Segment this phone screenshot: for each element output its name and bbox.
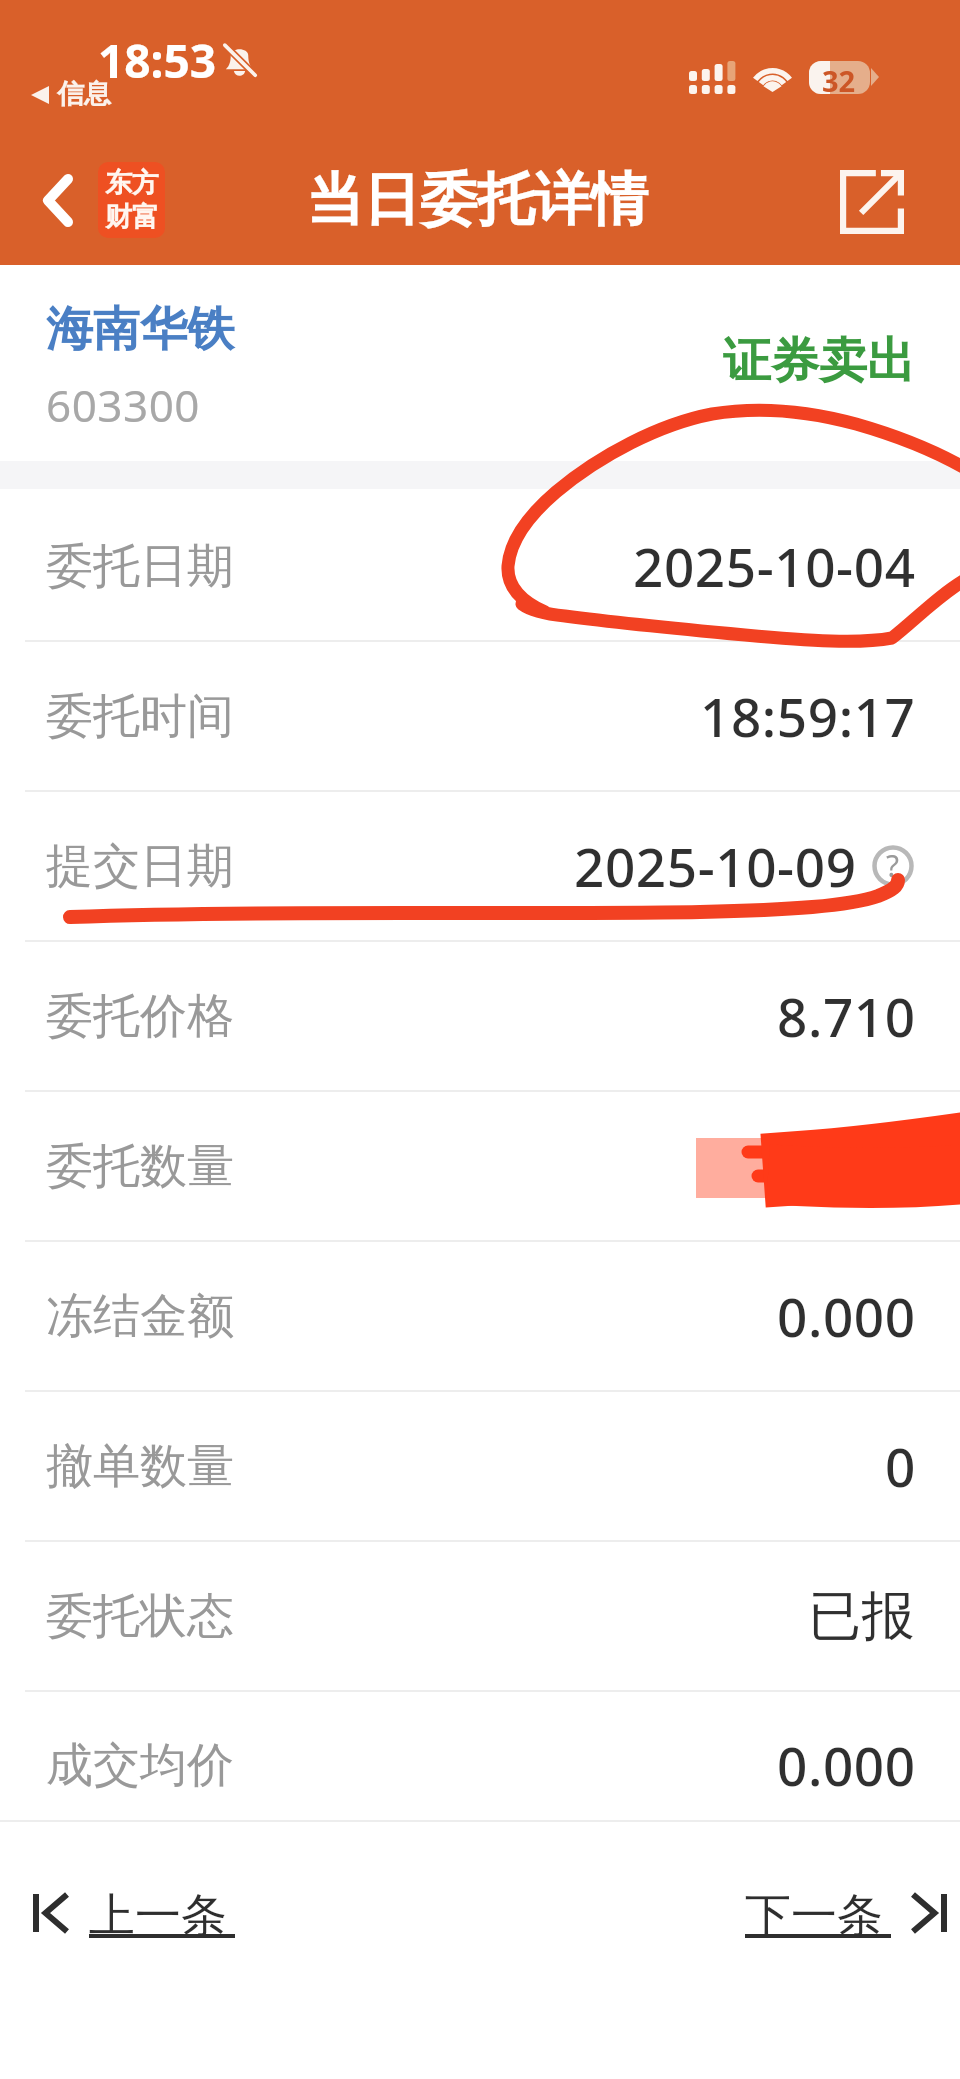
button[interactable]: 撤单数量 bbox=[0, 1392, 960, 1540]
staticText: 委托数量 bbox=[46, 1137, 234, 1196]
button[interactable]: 委托价格 bbox=[0, 942, 960, 1090]
staticText: 提交日期 bbox=[46, 837, 234, 896]
button[interactable]: 提交日期 bbox=[0, 792, 960, 940]
button[interactable]: Help bbox=[872, 845, 914, 887]
button[interactable]: 成交均价 bbox=[0, 1692, 960, 1820]
staticText: 信息 bbox=[57, 77, 111, 111]
button[interactable]: 委托数量 bbox=[0, 1092, 960, 1240]
staticText: 2025-10-04 bbox=[633, 530, 916, 602]
staticText: 海南华铁 bbox=[46, 300, 234, 359]
button[interactable]: 冻结金额 bbox=[0, 1242, 960, 1390]
staticText: 撤单数量 bbox=[46, 1437, 234, 1496]
staticText: 18:53 bbox=[98, 29, 217, 92]
staticText: 已报 bbox=[808, 1583, 916, 1650]
staticText: 当日委托详情 bbox=[306, 164, 648, 236]
staticText: 委托价格 bbox=[46, 987, 234, 1046]
staticText: 财富 bbox=[105, 200, 159, 234]
staticText: 委托时间 bbox=[46, 687, 234, 746]
staticText: 冻结金额 bbox=[46, 1287, 234, 1346]
button[interactable]: Share bbox=[824, 154, 920, 250]
staticText: 0.000 bbox=[777, 1729, 916, 1801]
button[interactable]: 委托状态 bbox=[0, 1542, 960, 1690]
button[interactable]: East Money logo bbox=[98, 162, 165, 238]
button[interactable]: Back bbox=[16, 159, 100, 241]
staticText: 成交均价 bbox=[46, 1736, 234, 1795]
staticText: 证券卖出 bbox=[723, 331, 915, 391]
staticText: 委托状态 bbox=[46, 1587, 234, 1646]
staticText: 32 bbox=[822, 61, 856, 94]
button[interactable]: 下一条 bbox=[745, 1887, 947, 1949]
button[interactable]: 上一条 bbox=[33, 1887, 235, 1949]
staticText: 2025-10-09 bbox=[574, 830, 857, 902]
staticText: 15800 bbox=[761, 1130, 916, 1202]
button[interactable]: 委托日期 bbox=[0, 492, 960, 640]
staticText: 603300 bbox=[46, 375, 201, 435]
staticText: ? bbox=[886, 845, 900, 886]
staticText: 0 bbox=[885, 1430, 916, 1502]
button[interactable]: 委托时间 bbox=[0, 642, 960, 790]
staticText: 东方 bbox=[105, 166, 159, 200]
staticText: 上一条 bbox=[89, 1887, 227, 1945]
staticText: 0.000 bbox=[777, 1280, 916, 1352]
staticText: 委托日期 bbox=[46, 537, 234, 596]
staticText: 18:59:17 bbox=[700, 680, 916, 752]
staticText: 8.710 bbox=[777, 980, 916, 1052]
staticText: 下一条 bbox=[745, 1887, 883, 1945]
